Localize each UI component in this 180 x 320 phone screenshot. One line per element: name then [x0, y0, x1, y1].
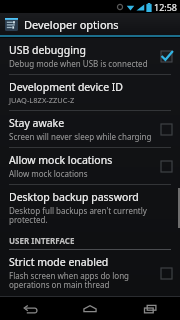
button[interactable]: Unchecked	[159, 266, 174, 281]
staticText: Strict mode enabled	[9, 255, 109, 269]
staticText: Allow mock locations	[9, 168, 88, 179]
staticText: Screen will never sleep while charging	[9, 131, 152, 142]
button[interactable]: Allow mock locations	[0, 148, 180, 184]
button[interactable]: USB debugging	[0, 38, 180, 74]
button[interactable]: Strict mode enabled	[0, 250, 180, 296]
button[interactable]: Development device ID	[0, 75, 180, 110]
staticText: USER INTERFACE	[9, 235, 75, 246]
staticText: Development device ID	[9, 80, 124, 94]
button[interactable]: Unchecked	[159, 159, 174, 174]
staticText: Allow mock locations	[9, 153, 113, 167]
button[interactable]: Back	[0, 297, 60, 320]
button[interactable]: Checked	[159, 49, 174, 64]
staticText: USB debugging	[9, 43, 86, 57]
button[interactable]: Recent apps	[120, 297, 180, 320]
button[interactable]: Stay awake	[0, 111, 180, 147]
button[interactable]: Home	[60, 297, 120, 320]
staticText: Stay awake	[9, 116, 65, 130]
staticText: Developer options	[24, 17, 119, 32]
button[interactable]: Desktop backup password	[0, 185, 180, 231]
staticText: Flash screen when apps do long operation…	[9, 270, 153, 291]
staticText: Desktop full backups aren't currently pr…	[9, 205, 174, 226]
staticText: Debug mode when USB is connected	[9, 58, 148, 69]
staticText: 12:58	[154, 1, 178, 13]
staticText: JUAQ-L8ZX-ZZUC-Z	[9, 95, 75, 105]
button[interactable]: Unchecked	[159, 122, 174, 137]
staticText: Desktop backup password	[9, 190, 139, 204]
